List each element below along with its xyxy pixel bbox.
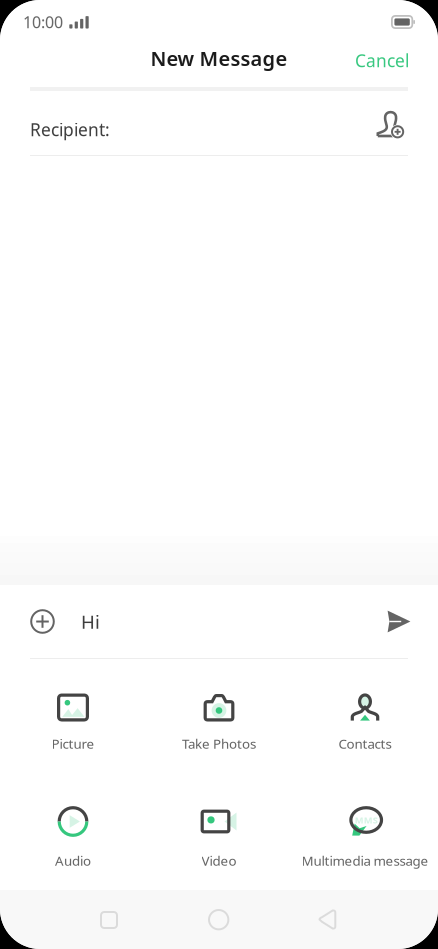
button[interactable]: Add attachment	[26, 605, 59, 638]
button[interactable]: Recents	[86, 897, 132, 943]
button[interactable]: Take Photos	[146, 692, 292, 750]
staticText: Cancel	[355, 49, 409, 72]
button[interactable]: Picture	[0, 692, 146, 750]
button[interactable]: Video	[146, 806, 292, 867]
staticText: Audio	[55, 852, 91, 869]
staticText: 10:00	[23, 11, 63, 33]
staticText: New Message	[150, 45, 287, 72]
staticText: Multimedia message	[301, 852, 428, 869]
staticText: Video	[201, 852, 236, 869]
button[interactable]: Back	[304, 895, 351, 944]
button[interactable]: MMS	[292, 806, 438, 867]
button[interactable]: Add recipient	[371, 104, 411, 144]
button[interactable]: Cancel	[333, 37, 438, 84]
button[interactable]: Send	[382, 605, 416, 638]
button[interactable]: Contacts	[292, 692, 438, 750]
button[interactable]: Audio	[0, 806, 146, 867]
staticText: Hi	[81, 609, 100, 634]
staticText: Picture	[51, 735, 94, 752]
staticText: Contacts	[338, 735, 391, 752]
staticText: MMS	[355, 814, 378, 826]
button[interactable]: Home	[194, 895, 243, 944]
staticText: Recipient:	[30, 118, 110, 141]
staticText: Take Photos	[182, 735, 256, 752]
